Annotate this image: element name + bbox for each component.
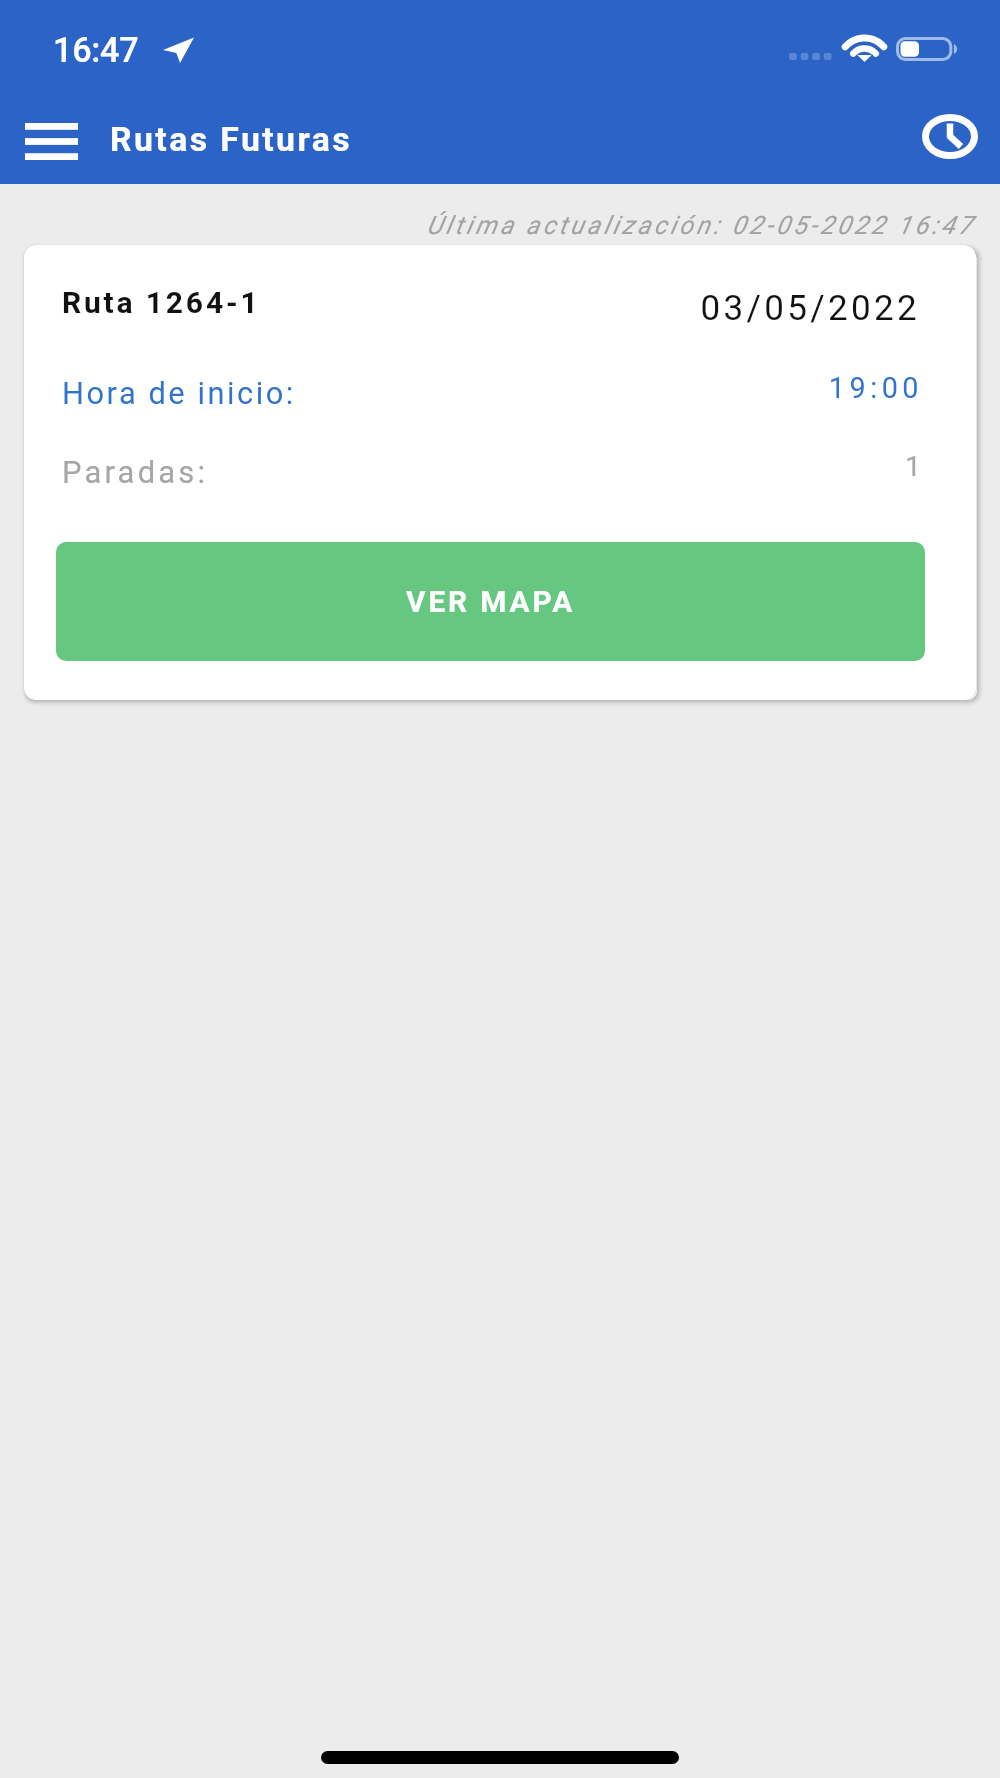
staticText: 19:00: [24, 371, 923, 405]
button[interactable]: Ruta 1264-1: [24, 245, 976, 700]
button[interactable]: Route history: [913, 100, 986, 172]
staticText: VER MAPA: [406, 584, 576, 619]
staticText: 16:47: [53, 30, 139, 70]
staticText: Rutas Futuras: [110, 120, 353, 160]
staticText: Hora de inicio:: [62, 375, 296, 411]
staticText: Ruta 1264-1: [62, 285, 261, 320]
staticText: Última actualización: 02-05-2022 16:47: [0, 211, 975, 241]
staticText: Paradas:: [62, 454, 209, 490]
button[interactable]: VER MAPA: [56, 542, 925, 661]
button[interactable]: Open navigation menu: [15, 105, 87, 177]
staticText: 1: [24, 450, 921, 483]
staticText: 03/05/2022: [24, 288, 920, 329]
